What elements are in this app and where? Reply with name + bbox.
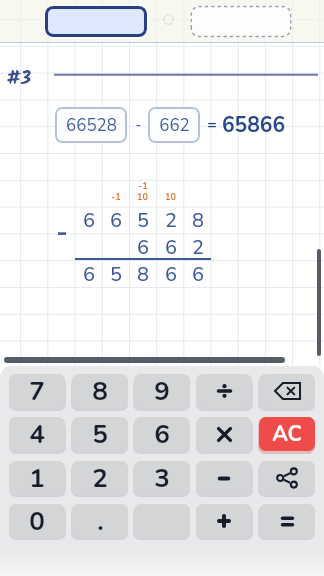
button[interactable]: Divide [196,374,252,408]
staticText: 7 [29,374,45,408]
staticText: 6 [192,261,204,288]
button[interactable]: 4 [9,417,65,451]
staticText: 5 [110,261,122,288]
staticText: - [135,115,142,135]
button[interactable]: AC [259,417,315,451]
button[interactable]: Resize keypad [4,357,285,363]
button[interactable]: Add page [190,5,292,38]
staticText: 4 [29,417,45,451]
button[interactable]: 7 [9,374,65,408]
button[interactable]: 1 [9,461,65,495]
staticText: 2 [192,234,204,261]
button[interactable]: 6 [134,417,190,451]
button[interactable]: Subtract [196,461,252,495]
staticText: -1 [138,180,148,191]
staticText: AC [272,420,302,449]
button[interactable]: Page indicator [162,13,175,26]
staticText: 5 [137,207,149,234]
button[interactable]: Add [196,504,252,538]
button[interactable]: Backspace [259,374,315,408]
staticText: 6 [137,234,149,261]
button[interactable]: . [72,504,128,538]
staticText: -1 [111,191,121,202]
staticText: #3 [6,64,32,94]
button[interactable]: Share [259,461,315,495]
staticText: 6 [110,207,122,234]
button[interactable]: 5 [72,417,128,451]
staticText: 6 [165,261,177,288]
staticText: 662 [159,114,190,137]
button[interactable]: Multiply [196,417,252,451]
button[interactable]: 662 [148,107,200,143]
staticText: 66528 [66,114,117,137]
staticText: 8 [92,374,108,408]
button[interactable]: 2 [72,461,128,495]
staticText: 6 [83,261,95,288]
staticText: 65866 [222,111,285,140]
staticText: 6 [165,234,177,261]
staticText: 9 [154,374,170,408]
staticText: 6 [154,417,170,451]
staticText: 1 [29,461,45,495]
staticText: 5 [92,417,108,451]
staticText: 10 [165,191,176,202]
button[interactable]: Equals [259,504,315,538]
staticText: 8 [192,207,204,234]
button[interactable]: 0 [9,504,65,538]
button[interactable]: Current page [45,6,147,37]
staticText: . [97,504,104,538]
staticText: 2 [165,207,177,234]
staticText: 8 [137,261,149,288]
staticText: 10 [137,191,148,202]
button[interactable]: 8 [72,374,128,408]
staticText: = [207,114,217,136]
button[interactable]: 9 [134,374,190,408]
staticText: 2 [92,461,108,495]
staticText: 6 [83,207,95,234]
staticText: 3 [154,461,170,495]
button[interactable]: 66528 [55,107,127,143]
button[interactable]: #3 [6,64,32,94]
button[interactable]: 3 [134,461,190,495]
staticText: 0 [29,504,45,538]
